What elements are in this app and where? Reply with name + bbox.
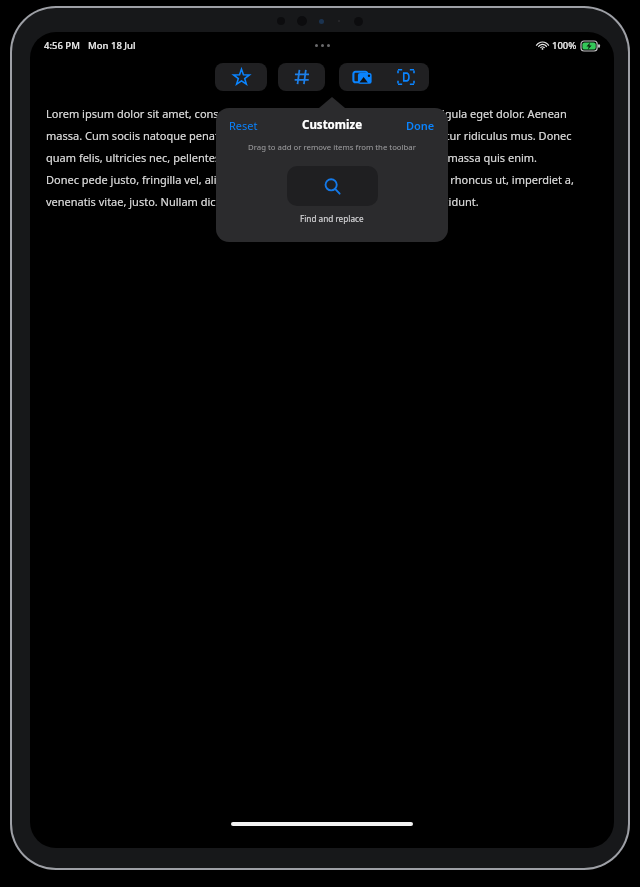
staticText: Lorem ipsum dolor sit amet, consectetuer… (46, 106, 567, 121)
staticText: 100% (552, 39, 577, 52)
staticText: 4:56 PM (44, 39, 80, 52)
button[interactable]: Done (406, 118, 435, 133)
staticText: Customize (302, 117, 362, 133)
button[interactable]: Bookmark (215, 63, 267, 91)
staticText: Find and replace (300, 213, 364, 224)
staticText: Done (406, 118, 435, 133)
button[interactable]: Scan document (384, 63, 428, 91)
staticText: Mon 18 Jul (88, 39, 136, 52)
staticText: Drag to add or remove items from the too… (216, 142, 448, 153)
staticText: massa. Cum sociis natoque penatibus et m… (46, 128, 572, 143)
button[interactable]: Insert photo (340, 63, 384, 91)
button[interactable]: Find and replace (287, 166, 378, 206)
staticText: quam felis, ultricies nec, pellentesque … (46, 150, 538, 165)
staticText: Reset (229, 118, 258, 133)
button[interactable]: Heading style (278, 63, 325, 91)
staticText: Donec pede justo, fringilla vel, aliquet… (46, 172, 574, 187)
staticText: venenatis vitae, justo. Nullam dictum fe… (46, 194, 479, 209)
button[interactable]: Reset (229, 118, 258, 133)
